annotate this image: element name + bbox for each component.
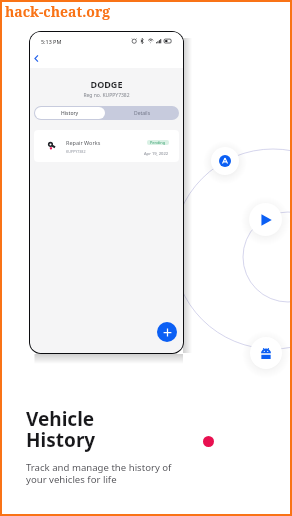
staticText: hack-cheat.org	[5, 2, 111, 21]
staticText: Details	[134, 110, 151, 117]
button[interactable]: Details	[106, 106, 179, 120]
button[interactable]: Google Play	[241, 195, 290, 244]
staticText: Reg no. KUPPY7382	[30, 92, 183, 99]
button[interactable]: Repair Works	[34, 130, 179, 162]
staticText: History	[61, 110, 79, 117]
staticText: KUPPY7382	[66, 149, 86, 154]
staticText: Pending	[150, 140, 166, 145]
button[interactable]: App Store	[203, 139, 247, 183]
staticText: Vehicle History	[26, 406, 96, 453]
staticText: DODGE	[30, 78, 183, 90]
button[interactable]: Add	[157, 322, 177, 342]
staticText: 5:13 PM	[41, 38, 62, 45]
staticText: Repair Works	[66, 139, 101, 146]
button[interactable]: History	[35, 107, 105, 119]
staticText: Track and manage the history of your veh…	[26, 461, 172, 485]
staticText: Apr 19, 2022	[144, 151, 169, 157]
button[interactable]: Android	[242, 329, 290, 377]
button[interactable]: Back	[30, 50, 44, 66]
